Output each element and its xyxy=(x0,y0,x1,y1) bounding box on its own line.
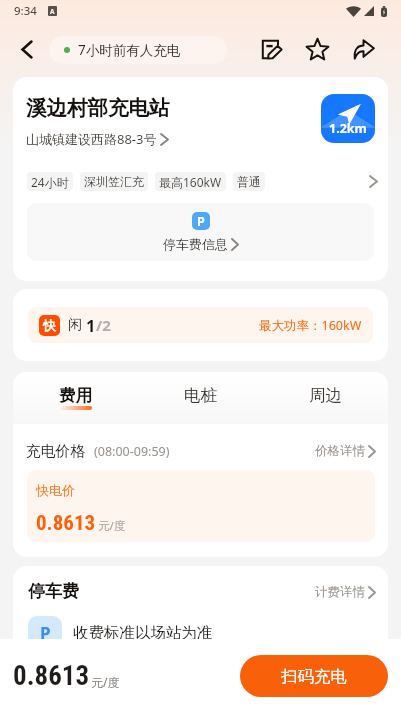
staticText: 7小时前有人充电 xyxy=(78,41,181,59)
button[interactable]: 7小时前有人充电 xyxy=(49,36,227,64)
button[interactable]: Favorite xyxy=(299,22,335,77)
staticText: 1.2km xyxy=(329,120,367,137)
staticText: 0.8613 xyxy=(13,660,90,692)
staticText: 快 xyxy=(43,318,56,334)
staticText: 0.8613 xyxy=(36,511,96,536)
button[interactable]: Edit note xyxy=(254,22,290,77)
staticText: 9:34 xyxy=(14,3,37,19)
button[interactable]: P xyxy=(27,203,374,261)
staticText: 停车费 xyxy=(28,581,79,602)
staticText: 电桩 xyxy=(184,385,217,406)
staticText: 最大功率：160kW xyxy=(259,317,362,334)
button[interactable]: 计费详情 xyxy=(315,584,375,600)
staticText: 收费标准以场站为准 xyxy=(73,623,213,643)
staticText: 元/度 xyxy=(98,518,126,534)
staticText: P xyxy=(40,622,51,645)
staticText: 停车费信息 xyxy=(163,236,228,252)
staticText: 元/度 xyxy=(91,674,120,690)
staticText: 充电价格 xyxy=(26,442,86,460)
staticText: 周边 xyxy=(309,385,342,406)
button[interactable]: 电桩 xyxy=(138,372,263,424)
button[interactable]: 价格详情 xyxy=(315,443,375,459)
staticText: A xyxy=(50,7,55,16)
staticText: 闲 xyxy=(68,316,82,334)
staticText: 快电价 xyxy=(36,482,75,498)
staticText: 扫码充电 xyxy=(281,666,347,687)
staticText: (08:00-09:59) xyxy=(94,443,170,460)
button[interactable]: 费用 xyxy=(13,372,138,424)
staticText: P xyxy=(197,213,205,230)
staticText: 溪边村部充电站 xyxy=(26,95,170,121)
button[interactable]: 山城镇建设西路88-3号 xyxy=(26,130,168,148)
button[interactable]: 扫码充电 xyxy=(240,655,388,697)
button[interactable]: 快 xyxy=(28,307,373,343)
staticText: 计费详情 xyxy=(315,584,365,600)
staticText: 1 xyxy=(86,314,96,336)
button[interactable]: 周边 xyxy=(263,372,388,424)
staticText: 普通 xyxy=(237,174,261,189)
staticText: 深圳笠汇充 xyxy=(84,174,144,189)
staticText: 费用 xyxy=(59,385,92,406)
button[interactable]: Share xyxy=(345,22,381,77)
staticText: 山城镇建设西路88-3号 xyxy=(26,130,157,148)
button[interactable]: Back xyxy=(0,22,43,77)
staticText: /2 xyxy=(96,315,111,335)
staticText: 24小时 xyxy=(31,174,69,190)
staticText: 价格详情 xyxy=(315,443,365,459)
button[interactable]: Navigate 1.2km xyxy=(321,94,375,143)
staticText: 最高160kW xyxy=(159,174,222,190)
